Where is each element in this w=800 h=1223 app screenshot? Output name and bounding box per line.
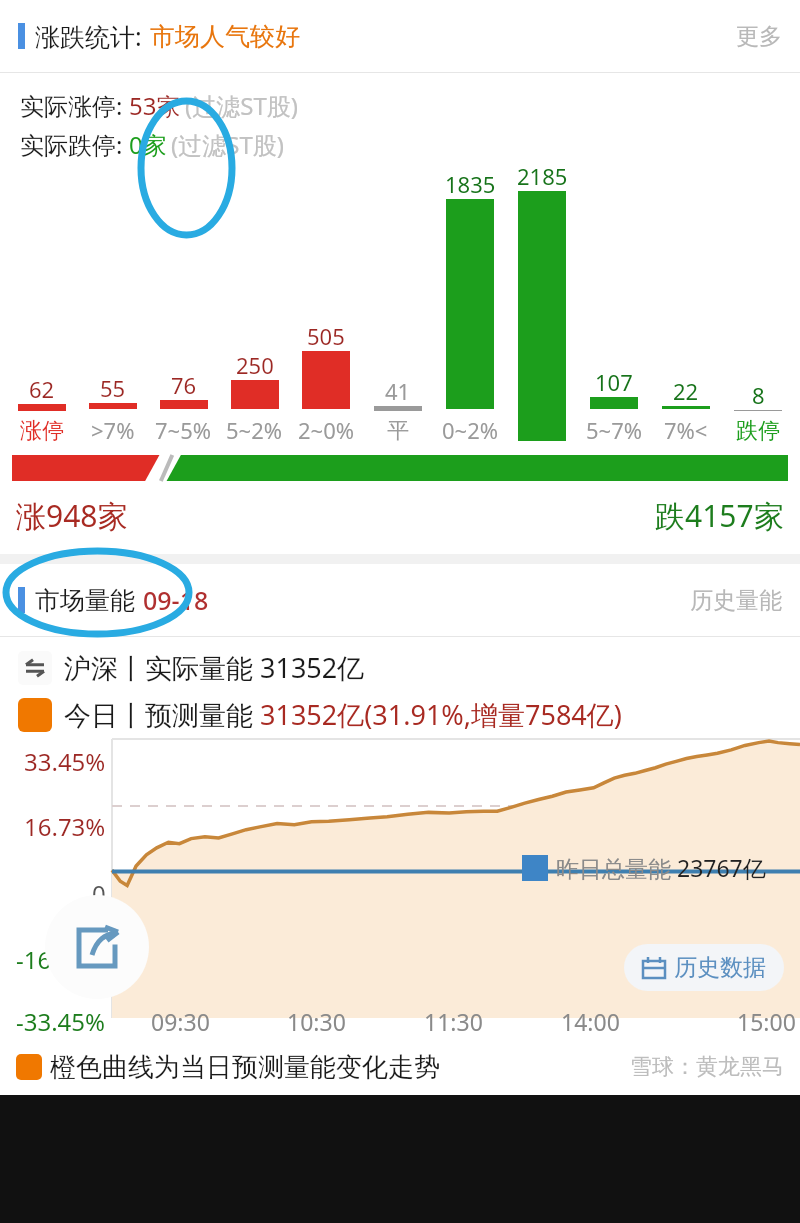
staticText: 33.45%: [24, 745, 106, 778]
staticText: 09:30: [151, 1006, 210, 1037]
staticText: 107: [595, 367, 633, 397]
staticText: 11:30: [424, 1006, 483, 1037]
staticText: 7%<: [664, 415, 708, 445]
staticText: 实际涨停:: [20, 89, 123, 122]
staticText: 涨停: [20, 417, 64, 445]
staticText: 涨948家: [16, 495, 128, 536]
staticText: 历史量能: [690, 586, 782, 615]
staticText: 7~5%: [155, 415, 212, 445]
staticText: 5~7%: [586, 415, 643, 445]
staticText: 沪深丨实际量能 31352亿: [64, 649, 365, 686]
button[interactable]: 今日丨预测量能 31352亿(31.91%,增量7584亿): [18, 696, 622, 733]
staticText: 平: [387, 417, 409, 445]
button[interactable]: 市场量能: [0, 564, 800, 636]
staticText: 2185: [517, 161, 568, 191]
staticText: 09-18: [143, 583, 209, 617]
staticText: 62: [29, 374, 55, 404]
staticText: 今日丨预测量能 31352亿(31.91%,增量7584亿): [64, 696, 622, 733]
staticText: 1835: [445, 169, 496, 199]
staticText: (过滤ST股): [171, 128, 284, 161]
staticText: 昨日总量能: [556, 852, 677, 883]
button[interactable]: 历史数据: [624, 944, 784, 991]
staticText: -16.73%: [16, 943, 106, 976]
staticText: 雪球：黄龙黑马: [630, 1053, 784, 1081]
button[interactable]: Share: [45, 895, 149, 999]
staticText: 2~0%: [298, 415, 355, 445]
staticText: 实际跌停:: [20, 128, 123, 161]
staticText: 41: [385, 376, 411, 406]
staticText: 更多: [736, 22, 782, 51]
staticText: 76: [171, 370, 197, 400]
staticText: 22: [673, 376, 699, 406]
staticText: >7%: [91, 415, 135, 445]
staticText: 55: [100, 373, 126, 403]
staticText: 历史数据: [674, 953, 766, 982]
staticText: 15:00: [737, 1006, 796, 1037]
staticText: (过滤ST股): [185, 89, 298, 122]
staticText: 8: [752, 380, 765, 410]
staticText: 橙色曲线为当日预测量能变化走势: [50, 1051, 440, 1084]
staticText: 505: [307, 321, 345, 351]
staticText: 23767亿: [677, 852, 766, 883]
staticText: 市场量能: [35, 585, 135, 616]
staticText: 5~2%: [226, 415, 283, 445]
staticText: 14:00: [561, 1006, 620, 1037]
staticText: 涨跌统计:: [35, 19, 142, 53]
staticText: 跌停: [736, 417, 780, 445]
staticText: 跌4157家: [655, 495, 784, 536]
staticText: 市场人气较好: [150, 21, 300, 52]
staticText: 0~2%: [442, 415, 499, 445]
staticText: 0: [92, 877, 106, 910]
staticText: 250: [236, 350, 274, 380]
staticText: 53家: [129, 89, 181, 122]
button[interactable]: 涨跌统计:: [0, 0, 800, 72]
button[interactable]: 沪深丨实际量能 31352亿: [18, 649, 365, 686]
staticText: -33.45%: [16, 1005, 106, 1038]
staticText: 0家: [129, 128, 167, 161]
staticText: 10:30: [287, 1006, 346, 1037]
staticText: 16.73%: [24, 810, 106, 843]
